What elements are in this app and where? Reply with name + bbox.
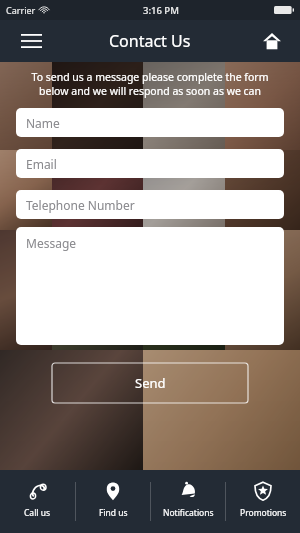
- staticText: 3:16 PM: [143, 4, 179, 17]
- button[interactable]: Notifications: [151, 470, 225, 533]
- button[interactable]: Send: [52, 363, 248, 403]
- button[interactable]: Promotions: [226, 470, 300, 533]
- staticText: Find us: [99, 507, 128, 519]
- staticText: To send us a message please complete the…: [14, 70, 286, 98]
- staticText: Telephone Number: [26, 197, 135, 213]
- button[interactable]: Home: [252, 21, 292, 61]
- button[interactable]: Name: [16, 108, 284, 137]
- staticText: Send: [135, 374, 166, 392]
- staticText: Carrier: [6, 4, 36, 16]
- staticText: Name: [26, 115, 60, 131]
- button[interactable]: Email: [16, 149, 284, 178]
- staticText: Promotions: [240, 507, 287, 519]
- staticText: Email: [26, 156, 57, 172]
- button[interactable]: Call us: [0, 470, 75, 533]
- button[interactable]: Find us: [76, 470, 150, 533]
- button[interactable]: Telephone Number: [16, 190, 284, 219]
- staticText: Contact Us: [109, 30, 191, 52]
- staticText: Notifications: [163, 507, 214, 519]
- staticText: Message: [26, 235, 77, 251]
- button[interactable]: Menu: [10, 20, 52, 62]
- button[interactable]: Message: [16, 227, 284, 345]
- staticText: Call us: [24, 507, 51, 519]
